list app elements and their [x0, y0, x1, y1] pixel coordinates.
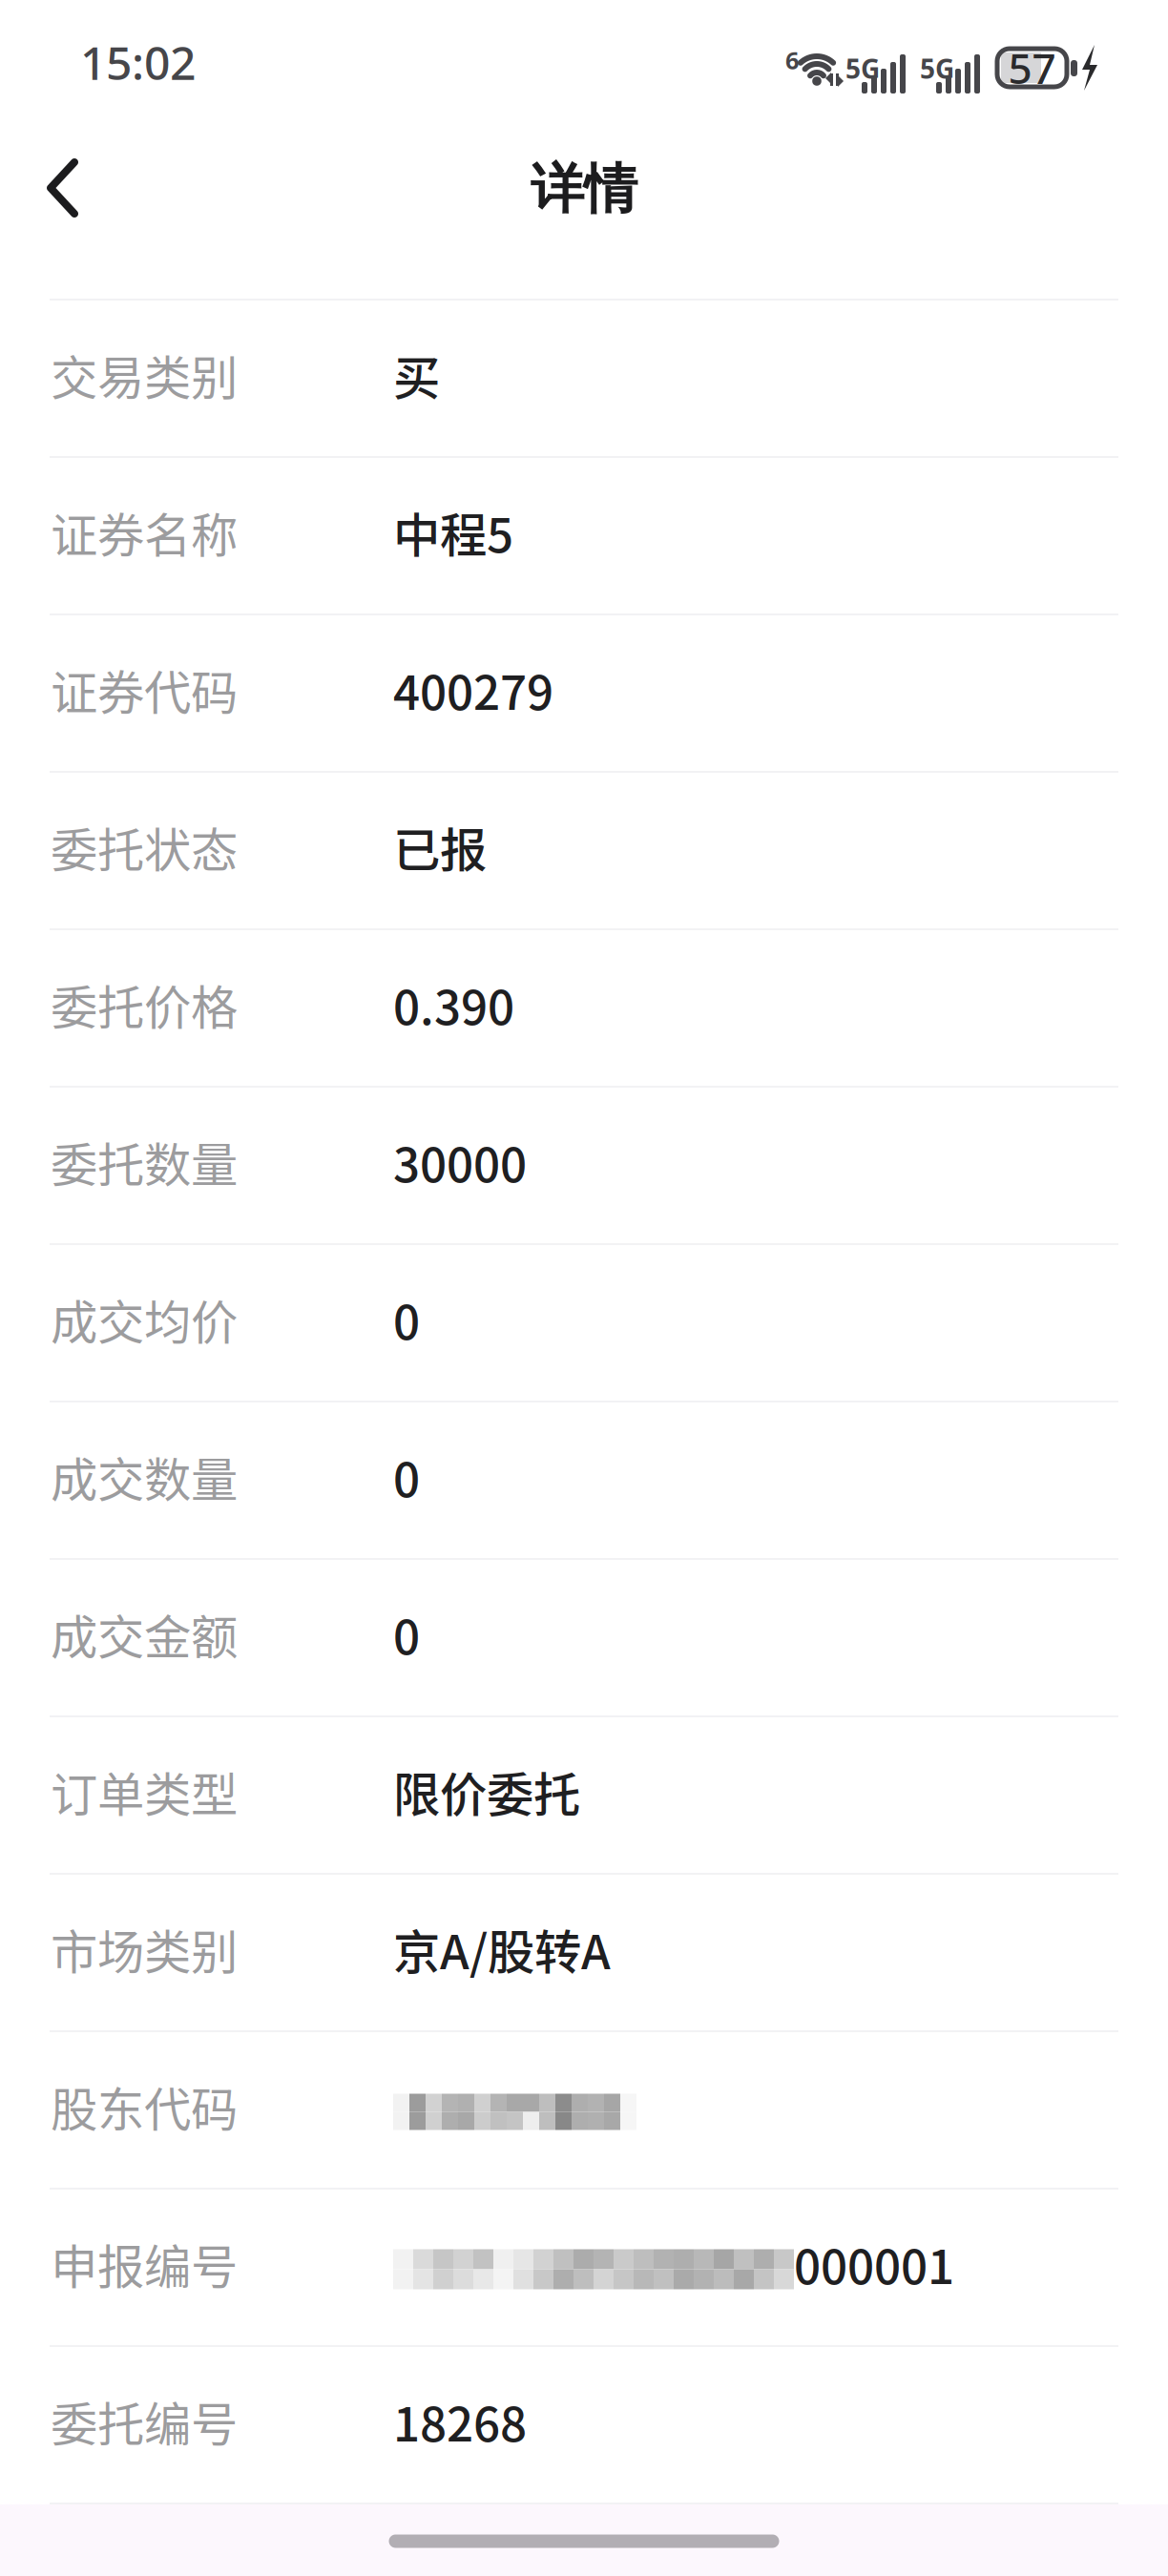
staticText: 57 — [1008, 40, 1056, 96]
staticText: 15:02 — [80, 32, 196, 93]
staticText: 委托价格 — [51, 970, 238, 1038]
staticText: 成交金额 — [51, 1600, 238, 1668]
staticText: 0 — [393, 1600, 420, 1668]
staticText: 委托编号 — [51, 2387, 238, 2455]
staticText: 京A/股转A — [393, 1915, 611, 1983]
staticText: 6 — [785, 44, 799, 76]
staticText: 买 — [393, 340, 440, 409]
staticText: 0 — [393, 1442, 420, 1510]
staticText: 订单类型 — [51, 1757, 238, 1825]
staticText: 证券名称 — [51, 498, 238, 566]
staticText: 中程5 — [393, 498, 513, 566]
staticText: 交易类别 — [51, 340, 238, 409]
staticText: 30000 — [393, 1128, 527, 1196]
staticText: 400279 — [393, 655, 553, 723]
staticText: 证券代码 — [51, 655, 238, 723]
staticText: 委托数量 — [51, 1128, 238, 1196]
staticText: 5G — [920, 51, 954, 86]
staticText: 股东代码 — [51, 2072, 238, 2140]
staticText: 0.390 — [393, 970, 514, 1038]
staticText: 限价委托 — [393, 1757, 580, 1825]
staticText: 5G — [845, 51, 880, 86]
staticText: 成交均价 — [51, 1285, 238, 1353]
button[interactable]: 返回 — [22, 135, 103, 240]
staticText: 18268 — [393, 2387, 527, 2455]
staticText: 详情 — [531, 156, 637, 222]
staticText: 市场类别 — [51, 1915, 238, 1983]
staticText: 已报 — [393, 813, 487, 881]
staticText: 000001 — [794, 2229, 954, 2298]
staticText: 0 — [393, 1285, 420, 1353]
staticText: 成交数量 — [51, 1442, 238, 1510]
staticText: 申报编号 — [51, 2229, 238, 2298]
staticText: 委托状态 — [51, 813, 238, 881]
